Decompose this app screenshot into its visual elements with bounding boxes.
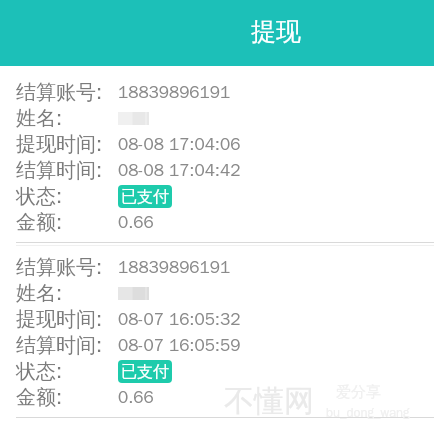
staticText: 0.66 bbox=[118, 212, 154, 233]
button[interactable]: 结算账号: bbox=[0, 254, 434, 410]
staticText: 结算账号: bbox=[16, 80, 102, 105]
staticText: 18839896191 bbox=[118, 82, 231, 103]
staticText: 提现 bbox=[251, 16, 301, 47]
staticText: 提现时间: bbox=[16, 307, 102, 332]
staticText: 金额: bbox=[16, 210, 62, 235]
staticText: 已支付 bbox=[121, 187, 169, 207]
staticText: 08-08 17:04:06 bbox=[118, 134, 241, 155]
staticText: bu_dong_wang bbox=[326, 404, 410, 420]
staticText: 18839896191 bbox=[118, 257, 231, 278]
staticText: 08-07 16:05:32 bbox=[118, 309, 241, 330]
staticText: 状态: bbox=[16, 184, 62, 209]
staticText: 0.66 bbox=[118, 387, 154, 408]
staticText: 结算时间: bbox=[16, 158, 102, 183]
staticText: 结算账号: bbox=[16, 255, 102, 280]
staticText: 姓名: bbox=[16, 281, 62, 306]
button[interactable]: 结算账号: bbox=[0, 79, 434, 235]
staticText: 姓名: bbox=[16, 106, 62, 131]
staticText: 状态: bbox=[16, 359, 62, 384]
staticText: 爱分享 bbox=[336, 383, 381, 402]
staticText: 金额: bbox=[16, 385, 62, 410]
staticText: 结算时间: bbox=[16, 333, 102, 358]
staticText: 08-08 17:04:42 bbox=[118, 160, 241, 181]
staticText: 提现时间: bbox=[16, 132, 102, 157]
staticText: 已支付 bbox=[121, 362, 169, 382]
staticText: 08-07 16:05:59 bbox=[118, 335, 241, 356]
staticText: 不懂网 bbox=[224, 382, 314, 420]
